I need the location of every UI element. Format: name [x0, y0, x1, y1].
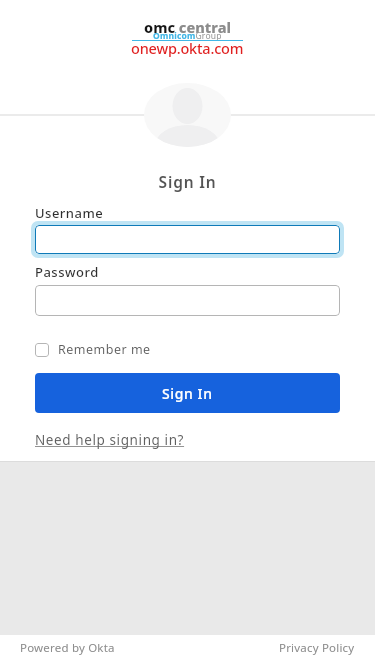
button[interactable] [35, 225, 340, 254]
button[interactable]: Sign In [35, 373, 340, 413]
staticText: Sign In [162, 384, 213, 403]
staticText: Password [35, 263, 99, 281]
button[interactable]: Need help signing in? [35, 431, 185, 449]
button[interactable]: Remember me [35, 341, 151, 358]
button[interactable]: Powered by Okta [20, 640, 115, 656]
staticText: Username [35, 204, 104, 222]
button[interactable] [35, 285, 340, 316]
staticText: onewp.okta.com [131, 38, 244, 58]
staticText: OmnicomGroup [153, 30, 222, 42]
staticText: omc central [144, 17, 231, 37]
button[interactable]: Privacy Policy [279, 640, 355, 656]
staticText: Sign In [0, 171, 375, 192]
staticText: Remember me [58, 341, 151, 358]
